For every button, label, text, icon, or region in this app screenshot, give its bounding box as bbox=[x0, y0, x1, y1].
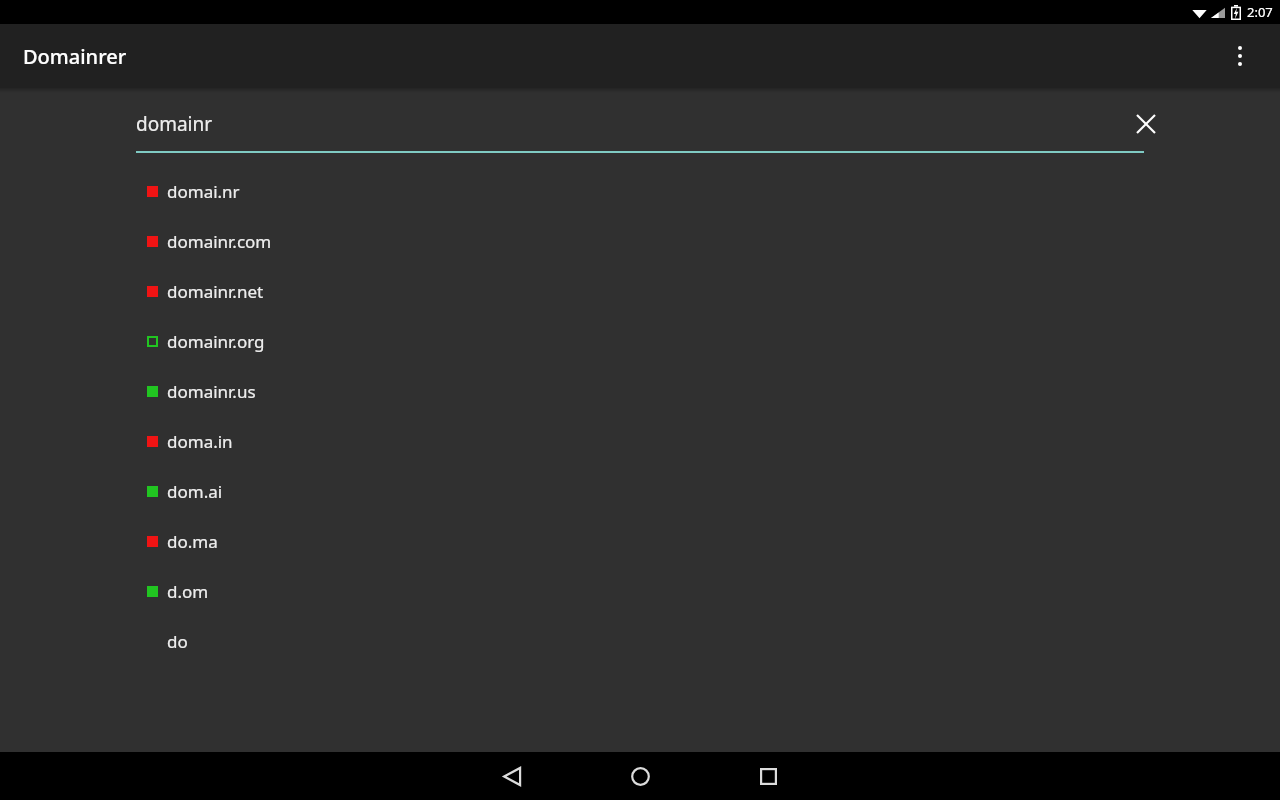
button[interactable]: doma.in bbox=[0, 416, 1280, 466]
staticText: do bbox=[167, 630, 188, 653]
staticText: domainr.net bbox=[167, 280, 264, 303]
button[interactable]: domainr.us bbox=[0, 366, 1280, 416]
button[interactable]: Back bbox=[484, 752, 540, 800]
button[interactable]: domai.nr bbox=[0, 166, 1280, 216]
button[interactable]: dom.ai bbox=[0, 466, 1280, 516]
button[interactable]: do bbox=[0, 616, 1280, 666]
staticText: dom.ai bbox=[167, 480, 223, 503]
button[interactable]: do.ma bbox=[0, 516, 1280, 566]
staticText: doma.in bbox=[167, 430, 233, 453]
staticText: Domainrer bbox=[23, 43, 127, 70]
button[interactable]: Clear search bbox=[1122, 100, 1170, 148]
staticText: domainr.us bbox=[167, 380, 256, 403]
button[interactable]: domainr.org bbox=[0, 316, 1280, 366]
button[interactable]: domainr.com bbox=[0, 216, 1280, 266]
button[interactable]: Recent apps bbox=[740, 752, 796, 800]
staticText: domai.nr bbox=[167, 180, 240, 203]
staticText: domainr.org bbox=[167, 330, 265, 353]
button[interactable]: More options bbox=[1216, 32, 1264, 80]
staticText: domainr bbox=[136, 111, 213, 137]
staticText: domainr.com bbox=[167, 230, 272, 253]
staticText: do.ma bbox=[167, 530, 218, 553]
staticText: 2:07 bbox=[1247, 3, 1273, 21]
staticText: d.om bbox=[167, 580, 209, 603]
button[interactable]: d.om bbox=[0, 566, 1280, 616]
button[interactable]: domainr bbox=[136, 100, 1096, 153]
button[interactable]: domainr.net bbox=[0, 266, 1280, 316]
button[interactable]: Home bbox=[612, 752, 668, 800]
